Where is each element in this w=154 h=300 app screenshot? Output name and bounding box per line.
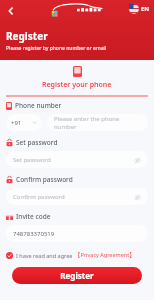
staticText: 748783370519 [13, 230, 55, 238]
staticText: Please register by phone number or email [6, 45, 107, 52]
staticText: Set password [16, 138, 58, 147]
staticText: 【Privacy Agreement】 [75, 251, 135, 259]
staticText: Register [60, 270, 94, 281]
button[interactable]: Language English [129, 4, 150, 14]
button[interactable]: Toggle password visibility [133, 193, 141, 201]
staticText: Set password [13, 156, 133, 164]
staticText: Register your phone [42, 80, 112, 90]
button[interactable]: 748783370519 [6, 225, 148, 242]
button[interactable]: Toggle password visibility [133, 156, 141, 164]
button[interactable]: Back [2, 2, 20, 20]
staticText: Confirm password [16, 175, 73, 184]
staticText: Please enter the phone number [54, 115, 141, 131]
button[interactable]: +91 [6, 114, 42, 131]
button[interactable]: 82Lottery logo [51, 3, 103, 20]
button[interactable]: Register [12, 267, 142, 284]
staticText: Register [6, 29, 48, 43]
button[interactable]: Please enter the phone number [47, 114, 148, 131]
staticText: I have read and agree [16, 252, 73, 259]
button[interactable]: Register your phone [34, 64, 120, 92]
staticText: EN [141, 5, 150, 13]
staticText: +91 [11, 119, 22, 127]
staticText: Phone number [15, 101, 62, 110]
staticText: Confirm password [13, 193, 133, 201]
button[interactable]: Confirm password [6, 188, 148, 205]
button[interactable]: Set password [6, 151, 148, 168]
staticText: Invite code [16, 212, 51, 221]
button[interactable]: I have read and agree [6, 250, 135, 260]
